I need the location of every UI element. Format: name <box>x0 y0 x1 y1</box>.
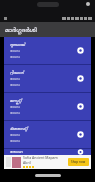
button[interactable]: Settings <box>76 149 85 155</box>
staticText: ഭാഗം <box>10 49 20 53</box>
staticText: മാർഗ്ഗദർശി <box>5 27 37 33</box>
staticText: ഭാഗം <box>10 111 20 115</box>
staticText: Shop now <box>71 160 86 164</box>
button[interactable]: ദുബായ് <box>4 37 91 64</box>
button[interactable]: ദോഹ <box>4 149 91 155</box>
button[interactable]: Settings <box>76 102 85 111</box>
staticText: ദോഹ <box>10 149 23 154</box>
button[interactable]: Settings <box>76 46 85 55</box>
staticText: ദുബായ് <box>10 42 26 47</box>
staticText: റിയാദ് <box>10 70 24 75</box>
staticText: ഭാഗം <box>10 77 20 81</box>
button[interactable]: Sofia Ancient Mapam Abril <box>4 155 91 169</box>
staticText: ഭാഗം <box>10 83 20 87</box>
staticText: മസ്കറ്റ് <box>10 98 22 103</box>
staticText: ഭാഗം <box>10 139 20 143</box>
button[interactable]: റിയാദ് <box>4 65 91 92</box>
button[interactable]: മാർഗ്ഗദർശി <box>0 22 95 37</box>
button[interactable]: Shop now <box>68 158 89 166</box>
staticText: ഭാഗം <box>10 55 20 59</box>
button[interactable]: മസ്കറ്റ് <box>4 93 91 120</box>
staticText: Sofia Ancient Mapam Abril <box>23 155 66 165</box>
staticText: ഭാഗം <box>10 105 20 109</box>
button[interactable]: കുവൈറ്റ് <box>4 121 91 148</box>
button[interactable]: Settings <box>76 130 85 139</box>
staticText: ഭാഗം <box>10 133 20 137</box>
button[interactable]: Settings <box>76 74 85 83</box>
staticText: കുവൈറ്റ് <box>10 126 28 131</box>
